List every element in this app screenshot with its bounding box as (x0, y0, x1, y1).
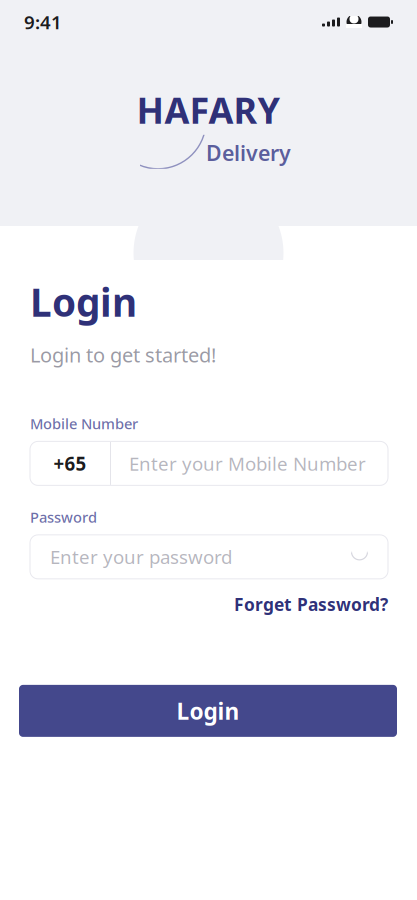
staticText: Forget Password? (234, 593, 388, 616)
staticText: Delivery (206, 138, 291, 167)
staticText: Login (30, 276, 137, 327)
staticText: Enter your password (50, 544, 232, 569)
button[interactable]: Forget Password? (234, 593, 388, 616)
button[interactable]: +65 (30, 441, 388, 485)
button[interactable]: Login (19, 685, 397, 737)
button[interactable]: Enter your password (30, 535, 388, 579)
staticText: 9:41 (24, 10, 62, 34)
staticText: Mobile Number (30, 414, 138, 433)
staticText: Password (30, 507, 97, 527)
staticText: +65 (53, 451, 86, 476)
staticText: Login (176, 696, 239, 726)
staticText: Enter your Mobile Number (129, 451, 366, 476)
staticText: HAFARY (136, 86, 280, 134)
staticText: Login to get started! (30, 341, 216, 368)
